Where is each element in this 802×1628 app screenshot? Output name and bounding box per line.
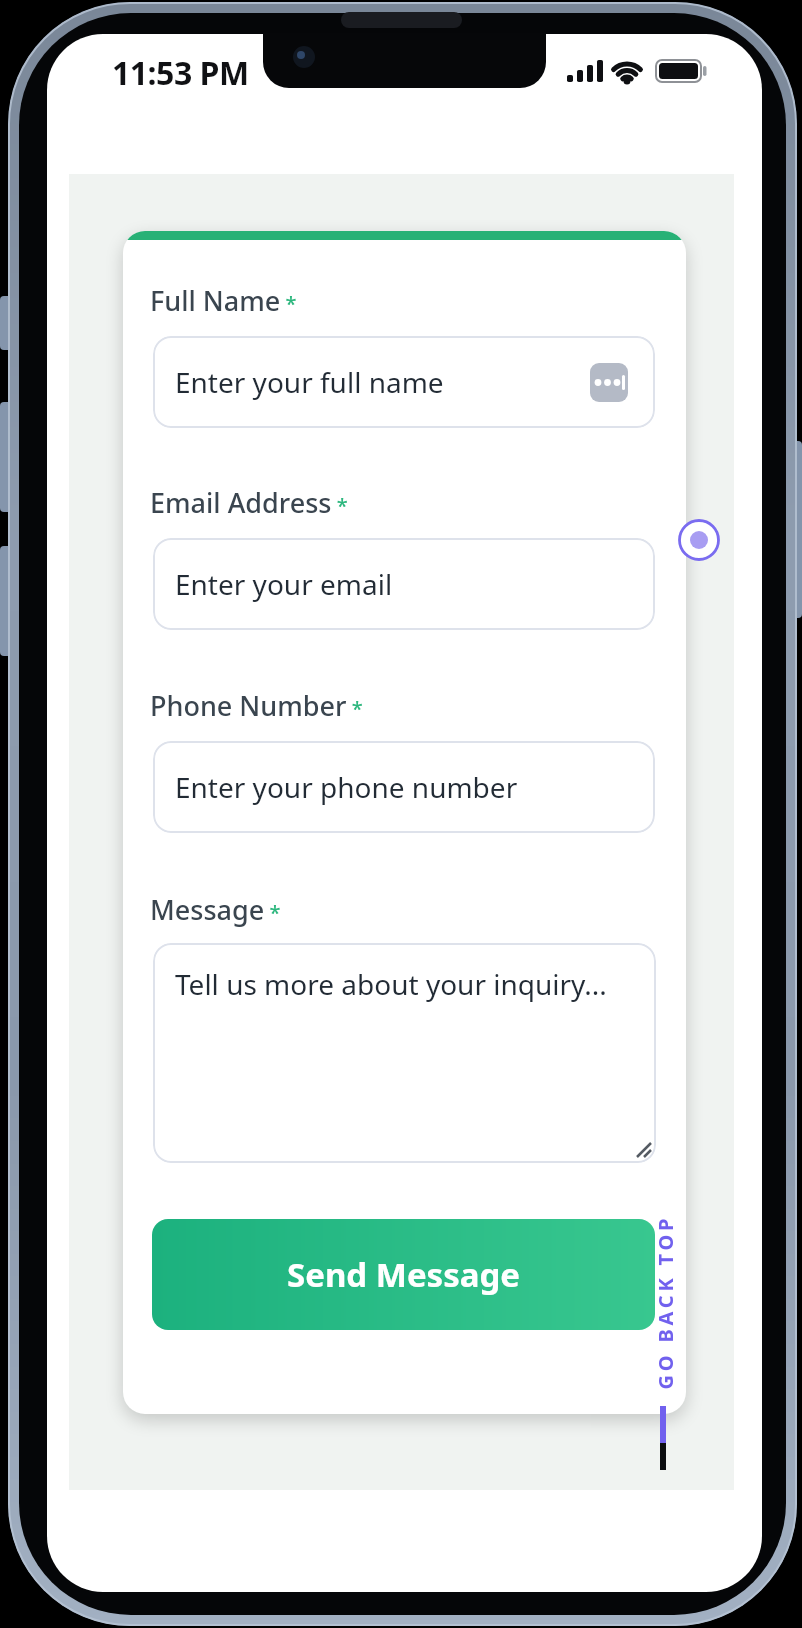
button[interactable]: Enter your full name xyxy=(153,336,655,428)
button[interactable]: GO BACK TOP xyxy=(568,1290,758,1314)
staticText: 11:53 PM xyxy=(112,51,249,95)
staticText: Message * xyxy=(150,891,281,928)
staticText: Enter your email xyxy=(175,565,393,603)
staticText: Full Name * xyxy=(150,282,297,319)
button[interactable]: Enter your email xyxy=(153,538,655,630)
staticText: GO BACK TOP xyxy=(651,1214,675,1389)
staticText: Tell us more about your inquiry... xyxy=(175,965,607,1003)
staticText: Enter your full name xyxy=(175,363,444,401)
button[interactable]: Send Message xyxy=(152,1219,655,1330)
staticText: Enter your phone number xyxy=(175,768,518,806)
staticText: Phone Number * xyxy=(150,687,363,724)
staticText: Email Address * xyxy=(150,484,348,521)
button[interactable]: Tell us more about your inquiry... xyxy=(153,943,656,1163)
button[interactable]: Enter your phone number xyxy=(153,741,655,833)
staticText: Send Message xyxy=(287,1252,521,1297)
